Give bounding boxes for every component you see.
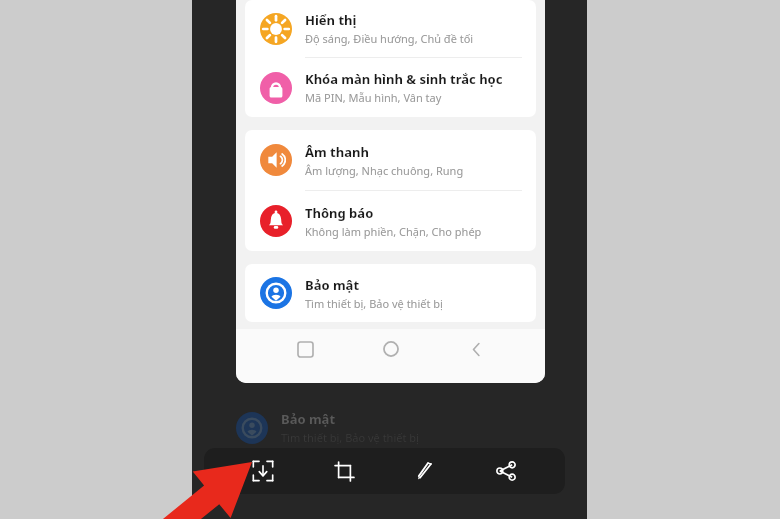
button[interactable]: Recent apps <box>288 332 322 366</box>
staticText: Tìm thiết bị, Bảo vệ thiết bị <box>281 430 419 445</box>
button[interactable]: Draw <box>403 449 447 493</box>
button[interactable]: Thông báo <box>245 191 536 251</box>
staticText: Thông báo <box>305 204 374 222</box>
staticText: Hiển thị <box>305 11 357 29</box>
button[interactable]: Share <box>484 449 528 493</box>
staticText: Âm lượng, Nhạc chuông, Rung <box>305 163 464 178</box>
button[interactable]: Bảo mật <box>245 264 536 322</box>
button[interactable]: Âm thanh <box>245 130 536 190</box>
button[interactable]: Hiển thị <box>245 0 536 57</box>
staticText: Không làm phiền, Chặn, Cho phép <box>305 224 482 239</box>
staticText: Âm thanh <box>305 143 369 161</box>
button[interactable]: Back <box>459 332 493 366</box>
button[interactable]: Home <box>374 332 408 366</box>
button[interactable]: Scroll capture <box>241 449 285 493</box>
staticText: Độ sáng, Điều hướng, Chủ đề tối <box>305 31 474 46</box>
button[interactable]: Khóa màn hình & sinh trắc học <box>245 58 536 117</box>
button[interactable]: Crop <box>322 449 366 493</box>
staticText: Bảo mật <box>281 410 336 428</box>
staticText: Tìm thiết bị, Bảo vệ thiết bị <box>305 296 443 311</box>
staticText: Bảo mật <box>305 276 360 294</box>
staticText: Mã PIN, Mẫu hình, Vân tay <box>305 90 442 105</box>
staticText: Khóa màn hình & sinh trắc học <box>305 70 503 88</box>
